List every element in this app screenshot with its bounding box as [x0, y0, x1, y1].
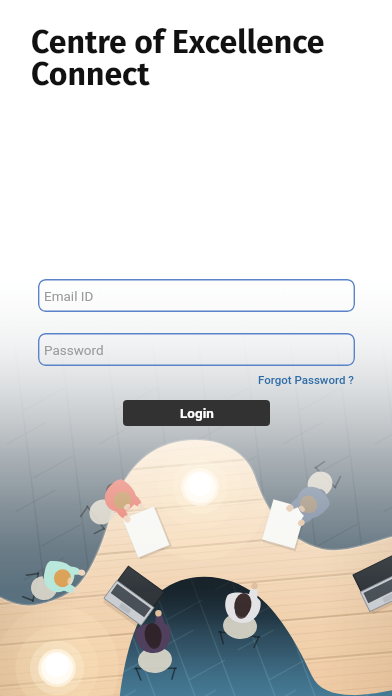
- button[interactable]: Forgot Password ?: [257, 371, 355, 388]
- staticText: Email ID: [44, 288, 94, 304]
- staticText: Password: [44, 342, 104, 358]
- button[interactable]: Login: [123, 400, 270, 426]
- button[interactable]: Email ID: [38, 279, 355, 312]
- button[interactable]: Password: [38, 333, 355, 366]
- staticText: Login: [180, 405, 214, 421]
- staticText: Centre of Excellence Connect: [31, 23, 325, 93]
